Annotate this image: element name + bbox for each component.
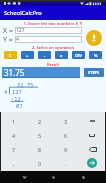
button[interactable]: 1 bbox=[1, 114, 27, 128]
staticText: C bbox=[9, 53, 12, 58]
staticText: + bbox=[26, 53, 29, 58]
staticText: 1. Insert the two numbers X, Y bbox=[0, 21, 106, 26]
staticText: - bbox=[44, 53, 46, 58]
other: Enter bbox=[87, 158, 97, 168]
button[interactable]: Minus bbox=[79, 114, 105, 128]
button[interactable]: 6 bbox=[53, 128, 79, 142]
button[interactable]: 127 bbox=[15, 27, 82, 34]
button[interactable]: 7 bbox=[1, 142, 27, 156]
staticText: 4 bbox=[4, 88, 8, 95]
button[interactable]: 5 bbox=[27, 128, 53, 142]
staticText: X = bbox=[3, 26, 13, 33]
button[interactable]: Voice input bbox=[86, 30, 102, 46]
button[interactable]: 4 bbox=[15, 36, 82, 43]
button[interactable]: Back bbox=[18, 171, 30, 183]
button[interactable]: Recents bbox=[77, 171, 89, 183]
button[interactable]: STEPS bbox=[84, 68, 104, 77]
staticText: 1 bbox=[12, 118, 16, 125]
staticText: 127 bbox=[16, 27, 25, 34]
staticText: 7 bbox=[12, 146, 16, 153]
staticText: 31.75 bbox=[4, 67, 25, 77]
staticText: 0 bbox=[38, 160, 42, 167]
staticText: 127 bbox=[12, 88, 22, 95]
staticText: . bbox=[65, 160, 67, 167]
staticText: 6 bbox=[64, 132, 68, 139]
button[interactable]: SchoolCalcPro bbox=[0, 6, 106, 20]
staticText: 4 bbox=[12, 132, 16, 139]
staticText: 8 bbox=[38, 146, 42, 153]
staticText: 2. Select an operation bbox=[0, 45, 106, 50]
staticText: 4 bbox=[16, 36, 19, 43]
staticText: 2 bbox=[38, 118, 42, 125]
other: Backspace bbox=[88, 145, 97, 154]
button[interactable]: Backspace bbox=[79, 142, 105, 156]
staticText: -12 bbox=[11, 95, 21, 102]
button[interactable]: 8 bbox=[27, 142, 53, 156]
staticText: x bbox=[60, 53, 63, 58]
staticText: SchoolCalcPro bbox=[4, 9, 42, 17]
staticText: DIV bbox=[75, 53, 82, 58]
button[interactable]: Space bbox=[79, 128, 105, 142]
button[interactable]: Enter bbox=[79, 156, 105, 170]
staticText: STEPS bbox=[88, 70, 100, 75]
other: Minus bbox=[88, 117, 96, 125]
button[interactable]: 4 bbox=[1, 128, 27, 142]
button[interactable]: x bbox=[55, 51, 68, 59]
staticText: 07 bbox=[16, 102, 23, 109]
staticText: Y = bbox=[3, 35, 13, 42]
staticText: 31.75 bbox=[17, 81, 34, 88]
other: Space bbox=[88, 131, 96, 139]
button[interactable]: - bbox=[38, 51, 51, 59]
button[interactable]: 0 bbox=[27, 156, 53, 170]
button[interactable]: Home bbox=[47, 171, 59, 183]
staticText: Result bbox=[0, 62, 106, 67]
button[interactable]: + bbox=[21, 51, 34, 59]
button[interactable]: , bbox=[1, 156, 27, 170]
staticText: % bbox=[94, 53, 98, 58]
button[interactable]: 9 bbox=[53, 142, 79, 156]
staticText: , bbox=[13, 160, 15, 167]
button[interactable]: 3 bbox=[53, 114, 79, 128]
button[interactable]: C bbox=[4, 51, 17, 59]
button[interactable]: DIV bbox=[72, 51, 85, 59]
staticText: 3 bbox=[64, 118, 68, 125]
button[interactable]: 2 bbox=[27, 114, 53, 128]
staticText: 9 bbox=[64, 146, 68, 153]
button[interactable]: % bbox=[89, 51, 102, 59]
button[interactable]: 31.75 bbox=[2, 67, 80, 77]
staticText: 5 bbox=[38, 132, 42, 139]
